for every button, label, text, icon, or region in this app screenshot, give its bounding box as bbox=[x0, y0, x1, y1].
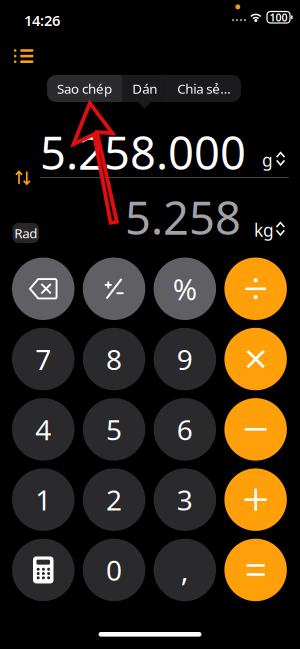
staticText: 8 bbox=[106, 340, 122, 378]
button[interactable]: Dán bbox=[122, 75, 167, 102]
button[interactable]: Chia sẻ… bbox=[167, 75, 241, 102]
button[interactable]: Swap units bbox=[6, 163, 40, 193]
button[interactable]: Add bbox=[224, 468, 287, 531]
button[interactable]: Divide bbox=[224, 257, 287, 320]
staticText: 0 bbox=[106, 551, 122, 589]
button[interactable]: 3 bbox=[154, 468, 216, 531]
button[interactable]: Subtract bbox=[224, 398, 287, 461]
staticText: kg bbox=[254, 218, 274, 241]
button[interactable]: Plus minus bbox=[83, 257, 145, 320]
button[interactable]: 7 bbox=[12, 328, 74, 390]
button[interactable]: 1 bbox=[12, 468, 74, 531]
button[interactable]: Rad bbox=[12, 223, 39, 243]
staticText: 3 bbox=[177, 481, 193, 518]
button[interactable]: 4 bbox=[12, 398, 74, 461]
staticText: 5 bbox=[106, 411, 122, 448]
button[interactable]: Equals bbox=[224, 539, 287, 601]
staticText: Chia sẻ… bbox=[177, 80, 231, 97]
staticText: 5.258.000 bbox=[40, 122, 246, 182]
staticText: Dán bbox=[132, 80, 157, 97]
button[interactable]: 0 bbox=[83, 539, 145, 601]
button[interactable]: Sao chép bbox=[47, 75, 122, 102]
button[interactable]: Delete bbox=[12, 257, 74, 320]
staticText: g bbox=[262, 148, 273, 171]
button[interactable]: Multiply bbox=[224, 328, 287, 390]
button[interactable]: , bbox=[154, 539, 216, 601]
staticText: 6 bbox=[177, 411, 193, 448]
staticText: 14:26 bbox=[24, 10, 60, 30]
button[interactable]: 8 bbox=[83, 328, 145, 390]
staticText: 9 bbox=[177, 340, 193, 378]
staticText: 5.258 bbox=[125, 187, 241, 247]
button[interactable]: Change unit: kilograms bbox=[254, 218, 286, 240]
button[interactable]: 5 bbox=[83, 398, 145, 461]
staticText: , bbox=[181, 550, 189, 589]
button[interactable]: 2 bbox=[83, 468, 145, 531]
button[interactable]: % bbox=[154, 257, 216, 320]
staticText: Sao chép bbox=[57, 80, 112, 97]
button[interactable]: History bbox=[0, 33, 42, 67]
button[interactable]: Calculator bbox=[12, 539, 74, 601]
button[interactable]: Change unit: grams bbox=[262, 148, 286, 170]
staticText: 4 bbox=[35, 411, 51, 448]
staticText: Rad bbox=[14, 224, 37, 242]
staticText: 100 bbox=[269, 10, 287, 24]
button[interactable]: 6 bbox=[154, 398, 216, 461]
staticText: % bbox=[173, 269, 197, 308]
staticText: 1 bbox=[35, 481, 51, 518]
button[interactable]: 9 bbox=[154, 328, 216, 390]
staticText: 2 bbox=[106, 481, 122, 518]
staticText: 7 bbox=[35, 340, 51, 378]
